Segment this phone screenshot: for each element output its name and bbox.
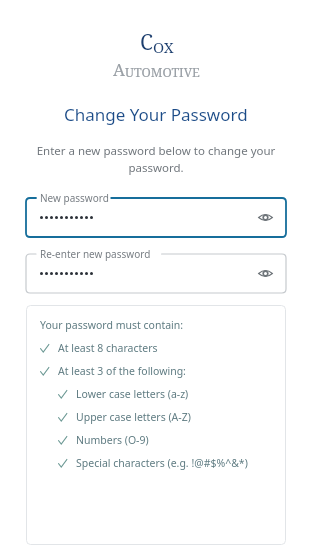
staticText: A (113, 58, 125, 81)
staticText: Enter a new password below to change you… (36, 143, 276, 175)
staticText: Change Your Password (64, 103, 248, 126)
staticText: UTOMOTIVE (125, 64, 200, 81)
button[interactable]: Show password (254, 262, 276, 284)
staticText: Re-enter new password (40, 247, 151, 261)
button[interactable]: New password (26, 191, 286, 237)
button[interactable]: Re-enter new password (26, 247, 286, 293)
staticText: Numbers (O-9) (76, 433, 149, 447)
button[interactable]: Show password (254, 206, 276, 228)
staticText: Special characters (e.g. !@#$%^&*) (76, 456, 248, 470)
staticText: Your password must contain: (40, 318, 184, 332)
staticText: Lower case letters (a-z) (76, 387, 189, 401)
staticText: C (140, 28, 153, 57)
staticText: Upper case letters (A-Z) (76, 410, 191, 424)
staticText: At least 8 characters (58, 341, 158, 355)
staticText: New password (40, 191, 109, 205)
staticText: OX (153, 37, 174, 57)
staticText: At least 3 of the following: (58, 364, 186, 378)
